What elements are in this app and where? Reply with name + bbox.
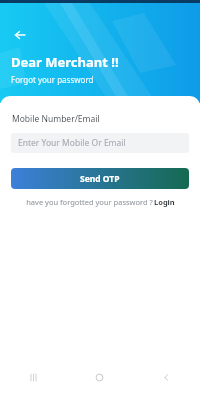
staticText: have you forgotted your password ? xyxy=(25,197,154,207)
staticText: Forgot your password xyxy=(11,74,94,85)
staticText: Enter Your Mobile Or Email xyxy=(18,137,126,149)
staticText: Mobile Number/Email xyxy=(12,113,100,125)
button[interactable]: Home xyxy=(66,362,133,393)
staticText: Dear Merchant !! xyxy=(11,53,119,71)
button[interactable]: Login xyxy=(154,197,175,207)
button[interactable]: Send OTP xyxy=(11,168,189,189)
button[interactable]: Recent apps xyxy=(0,362,66,393)
staticText: Send OTP xyxy=(80,173,120,185)
staticText: Login xyxy=(154,197,175,207)
button[interactable]: Enter Your Mobile Or Email xyxy=(11,133,189,153)
button[interactable]: Back xyxy=(10,25,30,45)
